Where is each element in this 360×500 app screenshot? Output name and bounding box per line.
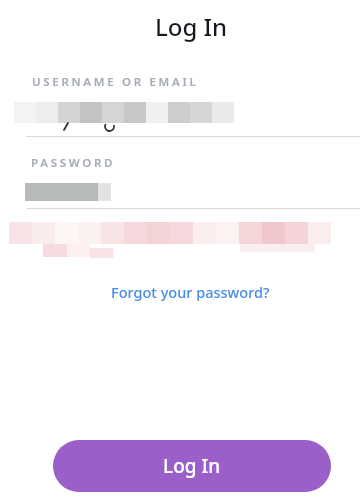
staticText: USERNAME OR EMAIL [32,74,199,90]
staticText: PASSWORD [31,155,116,171]
staticText: Log In [163,453,221,479]
button[interactable] [0,180,360,210]
button[interactable] [0,100,360,138]
staticText: Log In [155,10,228,42]
button[interactable]: Log In [53,440,331,492]
button[interactable]: Forgot your password? [111,282,270,302]
staticText: Forgot your password? [111,282,270,302]
